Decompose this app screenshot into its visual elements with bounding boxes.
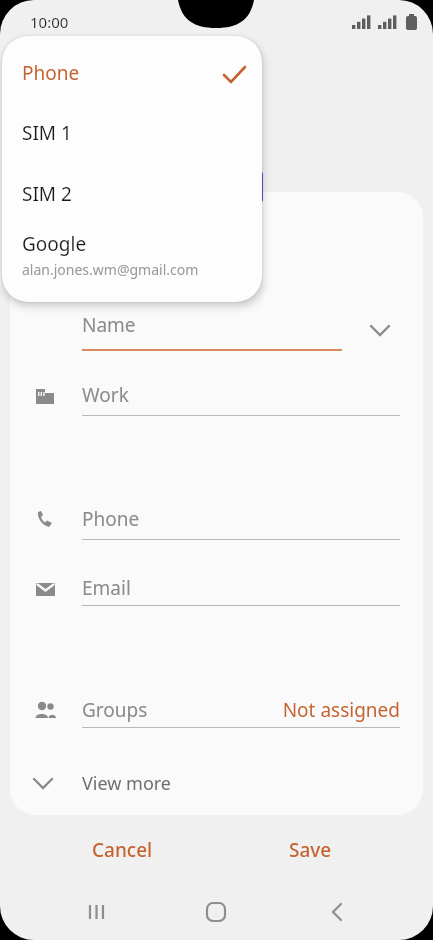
staticText: Phone <box>22 60 80 86</box>
staticText: Not assigned <box>228 697 400 723</box>
button[interactable]: Cancel <box>50 826 194 874</box>
button[interactable]: Work <box>28 374 403 420</box>
button[interactable]: Recent apps <box>67 884 127 940</box>
staticText: SIM 1 <box>22 120 72 146</box>
staticText: 10:00 <box>30 12 69 32</box>
button[interactable]: Phone <box>2 48 262 100</box>
staticText: Work <box>82 382 129 408</box>
button[interactable]: Groups <box>28 689 403 735</box>
button[interactable]: Name <box>70 308 403 352</box>
button[interactable]: Expand name <box>360 310 400 350</box>
button[interactable]: Back <box>308 884 368 940</box>
button[interactable]: SIM 2 <box>2 170 262 220</box>
button[interactable]: SIM 1 <box>2 109 262 159</box>
staticText: Email <box>82 575 131 601</box>
staticText: Groups <box>82 697 148 723</box>
staticText: alan.jones.wm@gmail.com <box>22 260 199 279</box>
button[interactable]: Google <box>2 228 262 290</box>
staticText: Phone <box>82 506 140 532</box>
button[interactable]: Home <box>186 884 246 940</box>
staticText: SIM 2 <box>22 181 72 207</box>
staticText: Save <box>289 837 332 863</box>
button[interactable]: Phone <box>28 498 403 544</box>
button[interactable]: Save <box>238 826 382 874</box>
button[interactable]: View more <box>28 762 408 804</box>
button[interactable]: Email <box>28 567 403 613</box>
staticText: Cancel <box>92 837 153 863</box>
staticText: View more <box>82 771 172 796</box>
staticText: Name <box>82 312 136 338</box>
staticText: Google <box>22 231 87 257</box>
